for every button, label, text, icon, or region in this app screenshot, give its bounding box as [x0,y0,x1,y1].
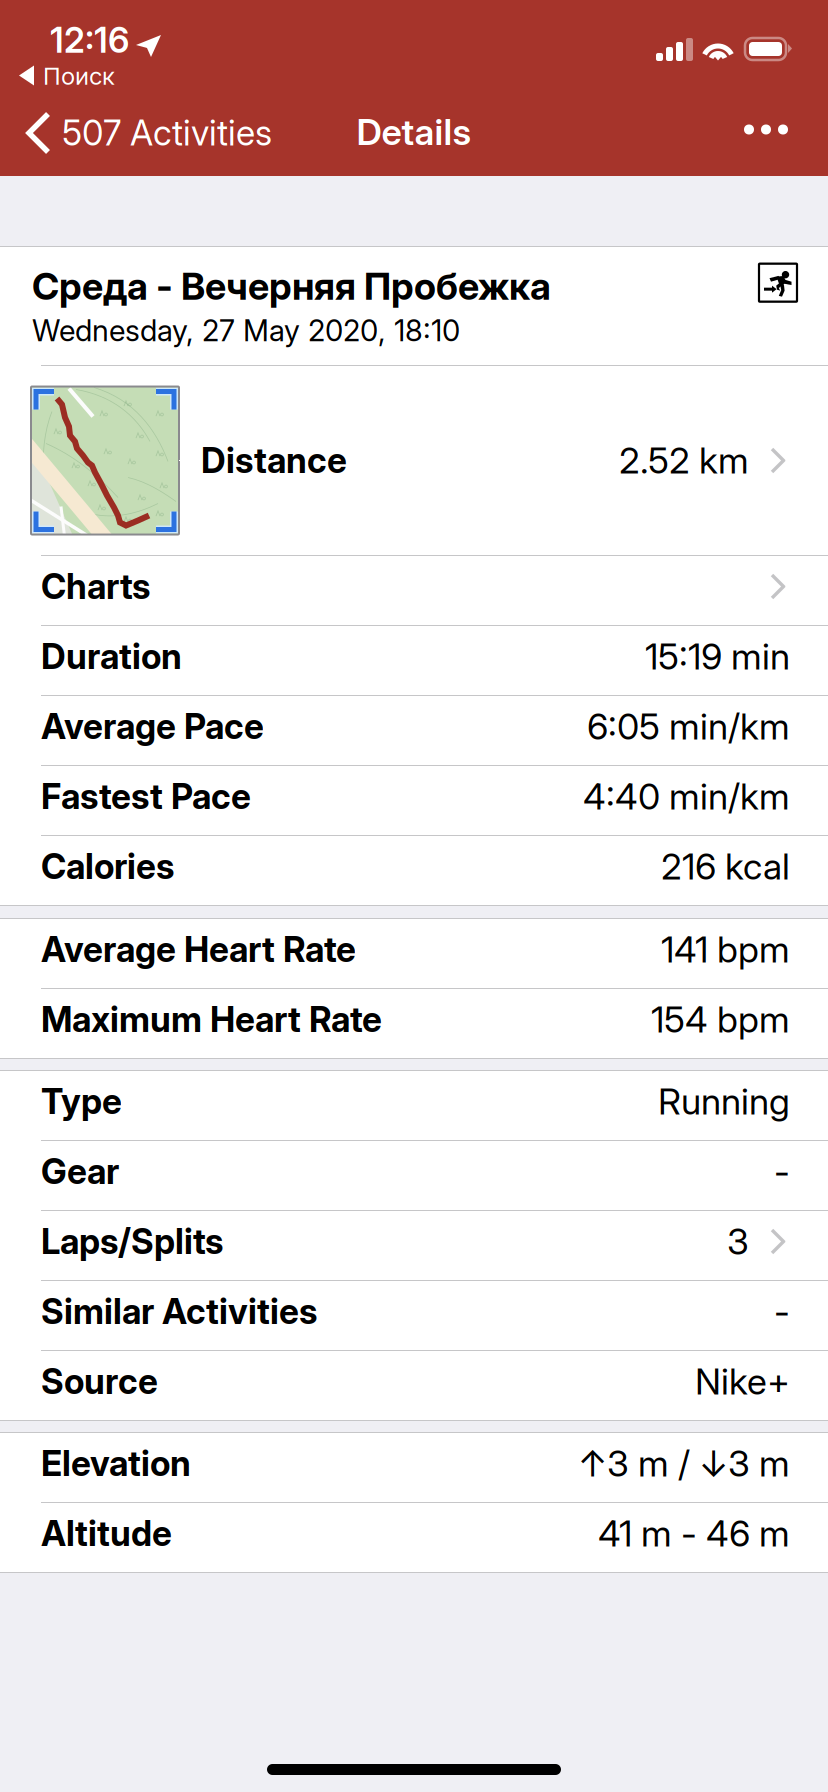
staticText: - [774,1290,790,1333]
button[interactable]: Fastest Pace [0,766,828,835]
staticText: ↑3 m / ↓3 m [578,1442,790,1485]
staticText: Calories [41,845,174,887]
staticText: Average Pace [41,705,264,747]
button[interactable]: 507 Activities [0,96,272,176]
button[interactable]: Laps/Splits [0,1211,828,1280]
staticText: Details [356,110,471,154]
button[interactable]: Type [0,1071,828,1140]
button[interactable]: Distance [0,366,828,555]
button[interactable]: Charts [0,556,828,625]
staticText: Source [41,1360,158,1402]
staticText: Wednesday, 27 May 2020, 18:10 [32,313,460,348]
staticText: Distance [201,439,347,481]
staticText: 154 bpm [651,998,790,1041]
staticText: Average Heart Rate [41,928,356,970]
button[interactable]: Similar Activities [0,1281,828,1350]
staticText: Nike+ [695,1360,790,1403]
staticText: Type [41,1080,122,1122]
staticText: Charts [41,565,150,607]
staticText: 12:16 [50,19,129,61]
button[interactable]: Gear [0,1141,828,1210]
staticText: Среда - Вечерняя Пробежка [32,264,551,309]
staticText: Altitude [41,1512,172,1554]
staticText: 4:40 min/km [583,775,790,818]
staticText: Maximum Heart Rate [41,998,382,1040]
staticText: Similar Activities [41,1290,317,1332]
button[interactable]: Calories [0,836,828,905]
staticText: Elevation [41,1442,191,1484]
staticText: 141 bpm [661,928,790,971]
button[interactable]: Duration [0,626,828,695]
staticText: 6:05 min/km [587,705,790,748]
staticText: 3 [727,1220,749,1263]
staticText: 15:19 min [645,635,790,678]
button[interactable]: Maximum Heart Rate [0,989,828,1058]
staticText: Поиск [43,61,115,90]
button[interactable]: Average Pace [0,696,828,765]
button[interactable]: More options [720,96,828,176]
staticText: Gear [41,1150,119,1192]
staticText: Duration [41,635,182,677]
button[interactable]: Elevation [0,1433,828,1502]
staticText: Fastest Pace [41,775,251,817]
button[interactable]: Altitude [0,1503,828,1572]
staticText: 216 kcal [661,845,790,888]
button[interactable]: Source [0,1351,828,1420]
staticText: 507 Activities [62,112,272,154]
button[interactable]: Average Heart Rate [0,919,828,988]
staticText: Laps/Splits [41,1220,223,1262]
staticText: 2.52 km [619,439,749,482]
staticText: 41 m - 46 m [598,1512,790,1555]
staticText: Running [658,1080,790,1123]
staticText: - [774,1150,790,1193]
